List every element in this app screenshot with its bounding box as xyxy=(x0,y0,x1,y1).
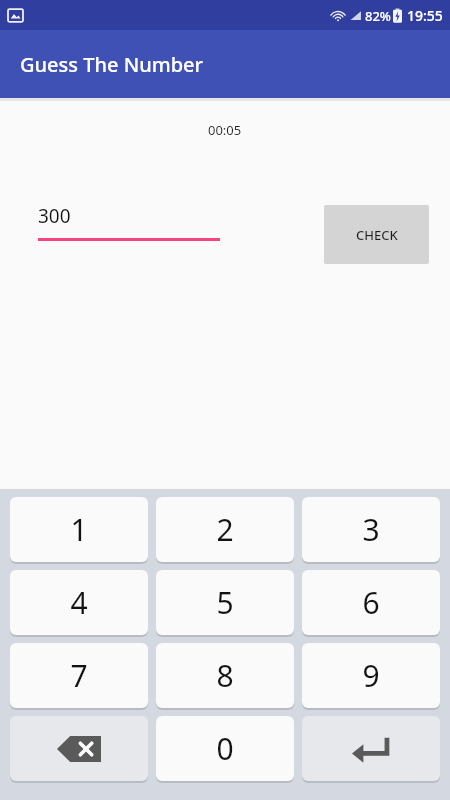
button[interactable]: 3 xyxy=(302,497,440,562)
button[interactable]: 0 xyxy=(156,716,294,781)
button[interactable]: 7 xyxy=(10,643,148,708)
staticText: 3 xyxy=(362,509,380,550)
button[interactable]: 6 xyxy=(302,570,440,635)
staticText: 19:55 xyxy=(407,6,443,25)
staticText: 7 xyxy=(70,655,88,696)
button[interactable]: CHECK xyxy=(324,205,429,264)
staticText: 8 xyxy=(216,655,234,696)
button[interactable]: 300 xyxy=(38,203,220,241)
button[interactable]: 8 xyxy=(156,643,294,708)
staticText: 9 xyxy=(362,655,380,696)
button[interactable]: 9 xyxy=(302,643,440,708)
staticText: 6 xyxy=(362,582,380,623)
button[interactable]: 4 xyxy=(10,570,148,635)
staticText: 0 xyxy=(216,728,234,769)
staticText: 5 xyxy=(216,582,234,623)
staticText: 1 xyxy=(70,509,88,550)
staticText: 4 xyxy=(70,582,88,623)
staticText: CHECK xyxy=(356,226,398,244)
button[interactable]: Enter xyxy=(302,716,440,781)
button[interactable]: 5 xyxy=(156,570,294,635)
staticText: Guess The Number xyxy=(20,51,203,78)
staticText: 2 xyxy=(216,509,234,550)
button[interactable]: 2 xyxy=(156,497,294,562)
staticText: 00:05 xyxy=(208,121,242,139)
button[interactable]: 1 xyxy=(10,497,148,562)
button[interactable]: Backspace xyxy=(10,716,148,781)
staticText: 300 xyxy=(38,203,71,229)
staticText: 82% xyxy=(365,7,391,25)
